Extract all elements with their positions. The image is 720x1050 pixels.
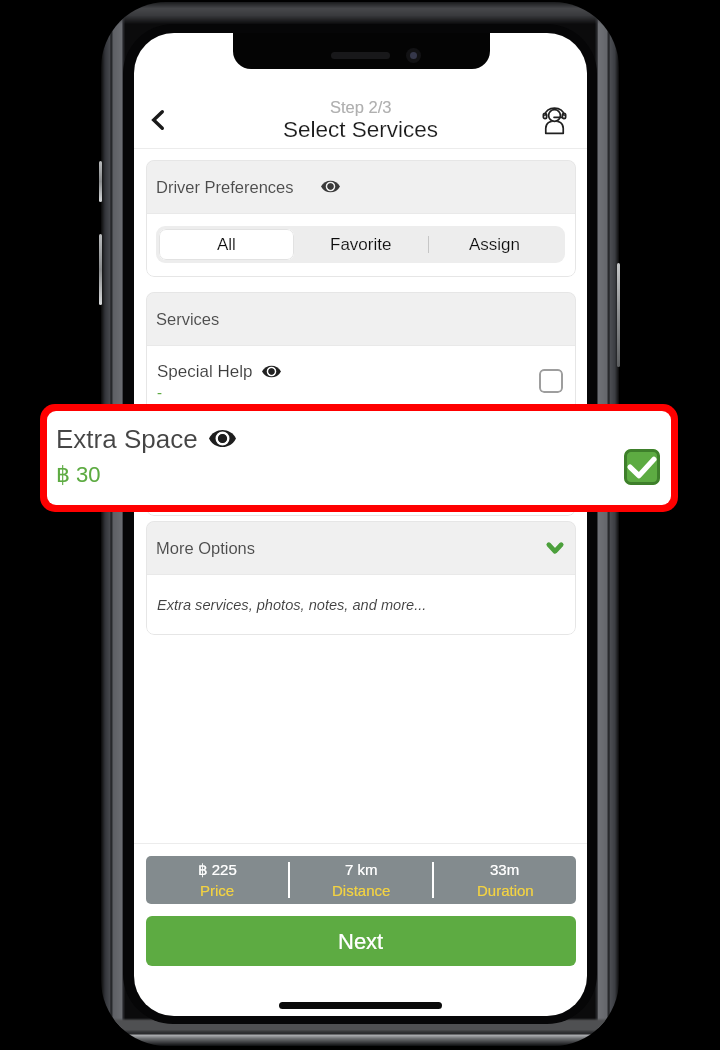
staticText: Price (200, 882, 235, 899)
staticText: Services (156, 310, 220, 328)
staticText: ฿ 225 (198, 861, 237, 878)
button[interactable]: 33m (434, 856, 576, 904)
staticText: - (157, 384, 162, 401)
staticText: All (217, 235, 236, 254)
staticText: Duration (477, 882, 534, 899)
button[interactable]: Expand more options (540, 533, 570, 563)
button[interactable]: Next (146, 916, 576, 966)
button[interactable]: Extra Space (47, 411, 671, 505)
other: Selected (624, 449, 660, 485)
staticText: 33m (490, 861, 520, 878)
staticText: 7 km (345, 861, 378, 878)
staticText: Driver Preferences (156, 178, 294, 196)
staticText: Assign (469, 235, 521, 254)
button[interactable]: Back (138, 96, 178, 136)
staticText: Distance (332, 882, 391, 899)
button[interactable]: Favorite (294, 229, 428, 260)
staticText: Extra services, photos, notes, and more.… (157, 597, 427, 613)
staticText: Next (338, 929, 384, 954)
staticText: ฿ 30 (56, 462, 101, 488)
button[interactable]: Extra Space (146, 417, 576, 487)
button[interactable]: ฿ 225 (146, 856, 288, 904)
staticText: Extra Space (56, 424, 198, 453)
staticText: Special Help (157, 362, 253, 381)
staticText: Step 2/3 (330, 98, 392, 116)
button[interactable]: All (159, 229, 294, 260)
button[interactable]: Customer support (533, 95, 576, 144)
staticText: More Options (156, 539, 256, 557)
staticText: Favorite (330, 235, 392, 254)
button[interactable]: 7 km (290, 856, 432, 904)
button[interactable]: Special Help (146, 346, 576, 416)
button[interactable]: Assign (428, 229, 562, 260)
staticText: Select Services (283, 117, 439, 142)
staticText: Extra Space (157, 433, 250, 452)
